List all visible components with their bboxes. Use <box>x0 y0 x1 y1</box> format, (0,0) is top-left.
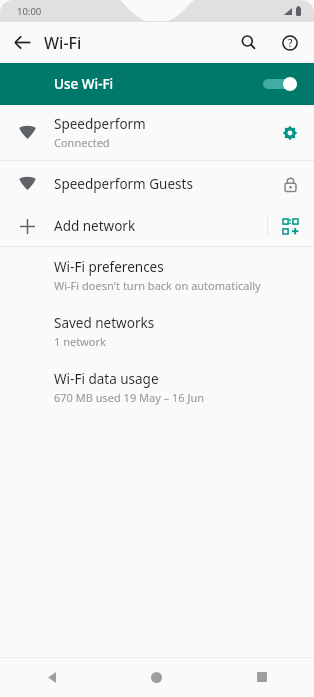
staticText: Speedperform <box>54 115 146 133</box>
button[interactable]: Network settings <box>268 111 312 155</box>
staticText: Connected <box>54 135 110 150</box>
staticText: Wi-Fi data usage <box>54 370 159 388</box>
button[interactable]: Scan QR code <box>268 206 312 246</box>
button[interactable]: Recent apps <box>209 657 314 697</box>
staticText: Wi-Fi <box>44 32 228 54</box>
staticText: Wi-Fi doesn't turn back on automatically <box>54 278 261 293</box>
button[interactable]: Add network <box>0 206 267 246</box>
staticText: Wi-Fi preferences <box>54 258 164 276</box>
button[interactable]: Use Wi-Fi <box>0 63 314 105</box>
button[interactable]: Wi-Fi data usage <box>0 359 314 415</box>
button[interactable]: Back <box>0 657 104 697</box>
button[interactable]: Back <box>0 22 44 63</box>
staticText: 10:00 <box>17 5 42 18</box>
staticText: Add network <box>54 217 136 235</box>
button[interactable]: Speedperform <box>0 105 314 160</box>
button[interactable]: Saved networks <box>0 303 314 359</box>
staticText: Speedperform Guests <box>54 175 193 193</box>
button[interactable]: Wi-Fi preferences <box>0 247 314 303</box>
staticText: 670 MB used 19 May – 16 Jun <box>54 390 205 405</box>
staticText: 1 network <box>54 334 106 349</box>
staticText: Saved networks <box>54 314 155 332</box>
staticText: ? <box>288 36 293 50</box>
button[interactable]: Help <box>268 22 312 63</box>
staticText: Use Wi-Fi <box>54 75 263 93</box>
button[interactable]: Speedperform Guests <box>0 161 314 206</box>
button[interactable]: Home <box>104 657 209 697</box>
button[interactable]: Search <box>228 22 268 63</box>
